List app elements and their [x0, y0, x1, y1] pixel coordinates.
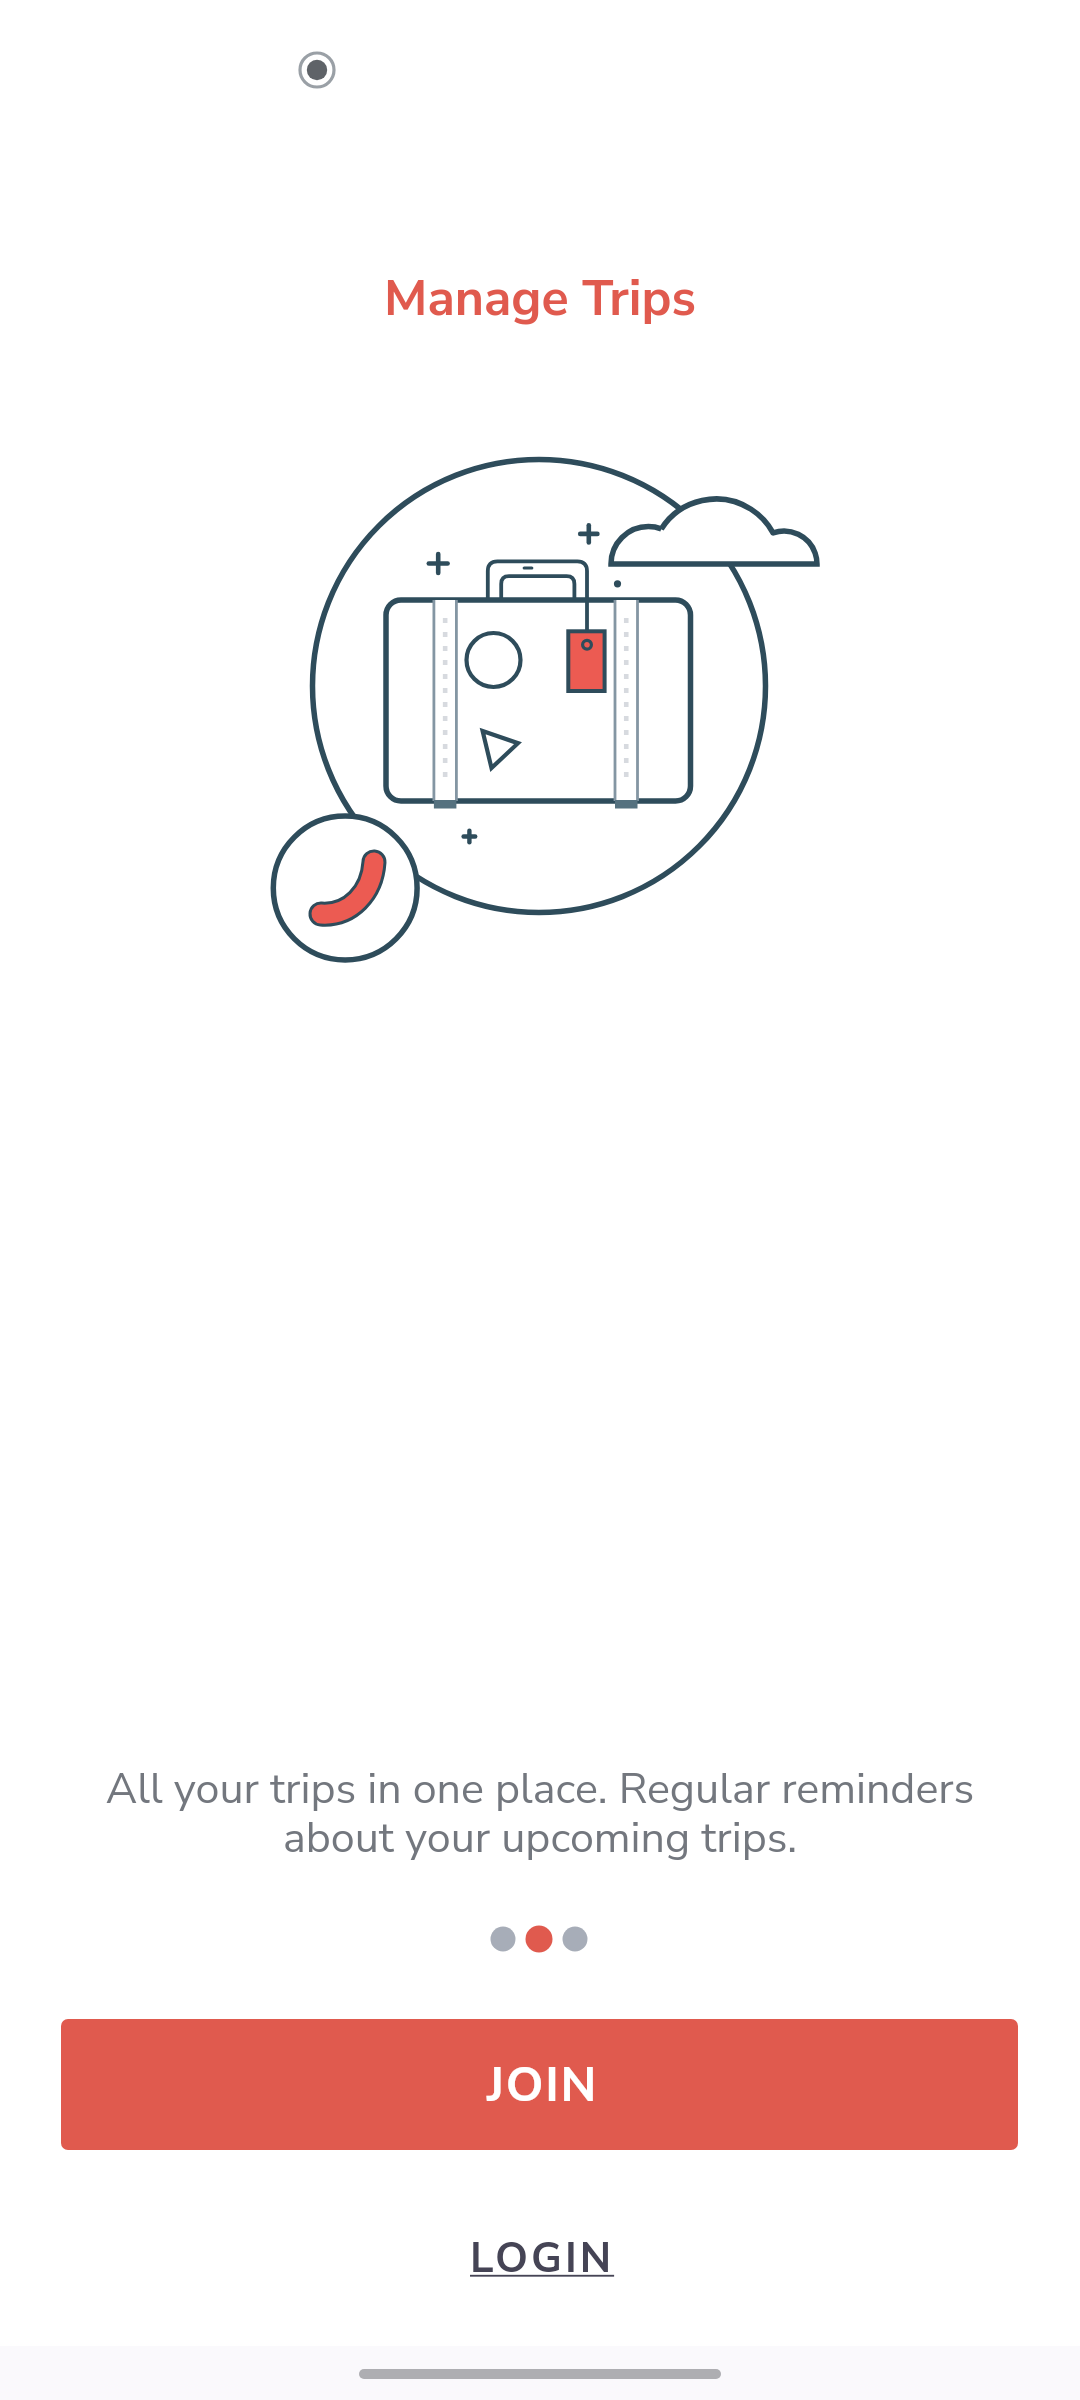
button[interactable]: Page 1: [485, 1921, 521, 1957]
staticText: Manage Trips: [0, 264, 1080, 332]
button[interactable]: Page 3: [557, 1921, 593, 1957]
staticText: All your trips in one place. Regular rem…: [0, 1760, 1080, 1867]
button[interactable]: JOIN: [61, 2019, 1018, 2150]
button[interactable]: Page 2: [521, 1921, 557, 1957]
staticText: JOIN: [487, 2052, 599, 2117]
button[interactable]: LOGIN: [400, 2213, 680, 2303]
staticText: LOGIN: [470, 2230, 615, 2287]
